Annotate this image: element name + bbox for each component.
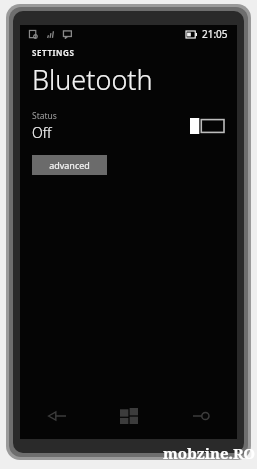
button[interactable]: Status: [20, 110, 237, 142]
staticText: SETTINGS: [32, 47, 75, 58]
button[interactable]: Back: [20, 393, 93, 439]
button[interactable]: advanced: [32, 155, 107, 175]
staticText: 21:05: [202, 27, 228, 41]
staticText: Status: [32, 110, 57, 122]
staticText: mobzine.RO: [163, 443, 256, 463]
button[interactable]: Start: [93, 393, 165, 439]
button[interactable]: Search: [165, 393, 237, 439]
staticText: Bluetooth: [32, 61, 153, 98]
staticText: Off: [32, 123, 52, 142]
button[interactable]: Bluetooth toggle, off: [190, 118, 224, 134]
staticText: advanced: [49, 159, 90, 171]
